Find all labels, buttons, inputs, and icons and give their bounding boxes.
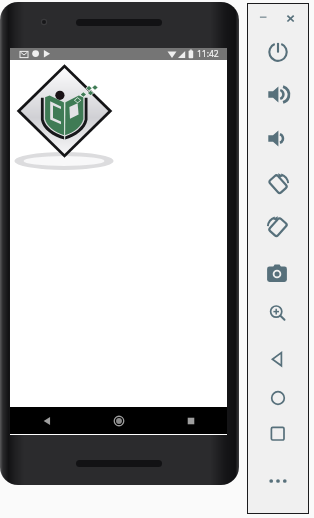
button[interactable]: Volume up [265,81,291,107]
staticText: 11:42 [197,48,219,60]
button[interactable]: More options [265,468,291,494]
button[interactable]: Back [265,346,291,372]
button[interactable]: Volume down [265,125,291,151]
button[interactable]: Overview [265,421,291,447]
button[interactable]: Rotate left [265,170,291,196]
button[interactable]: Rotate right [265,213,291,239]
button[interactable]: Recent apps [155,407,227,434]
button[interactable]: Power [265,38,291,64]
button[interactable]: Home [83,407,155,434]
button[interactable]: Zoom [265,300,291,326]
button[interactable]: Take screenshot [265,258,291,284]
button[interactable]: Minimize [258,10,274,26]
button[interactable]: Back [10,407,83,434]
button[interactable]: Close [282,10,298,26]
button[interactable]: Home [265,385,291,411]
